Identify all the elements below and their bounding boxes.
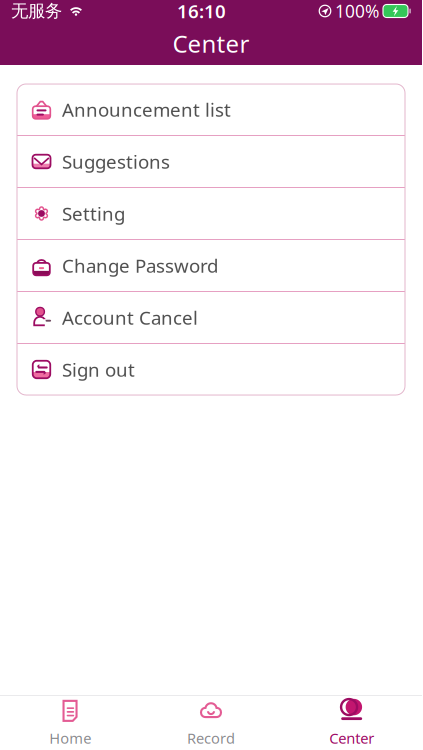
button[interactable]: Change Password xyxy=(17,240,405,291)
staticText: Home xyxy=(49,728,91,748)
button[interactable]: Account Cancel xyxy=(17,292,405,343)
staticText: 16:10 xyxy=(177,0,226,23)
staticText: Account Cancel xyxy=(62,305,198,330)
button[interactable]: Center xyxy=(281,699,422,747)
staticText: 无服务 xyxy=(11,0,62,22)
staticText: Setting xyxy=(62,201,125,226)
staticText: Center xyxy=(329,728,374,748)
staticText: Announcement list xyxy=(62,97,231,122)
button[interactable]: Sign out xyxy=(17,344,405,395)
button[interactable]: Setting xyxy=(17,188,405,239)
staticText: Record xyxy=(187,728,235,748)
button[interactable]: Suggestions xyxy=(17,136,405,187)
staticText: Suggestions xyxy=(62,149,170,174)
staticText: Change Password xyxy=(62,253,218,278)
staticText: Center xyxy=(172,28,249,59)
staticText: Sign out xyxy=(62,357,135,382)
staticText: 100% xyxy=(335,0,379,22)
button[interactable]: Announcement list xyxy=(17,84,405,135)
button[interactable]: Home xyxy=(0,699,141,747)
button[interactable]: Record xyxy=(141,699,281,747)
